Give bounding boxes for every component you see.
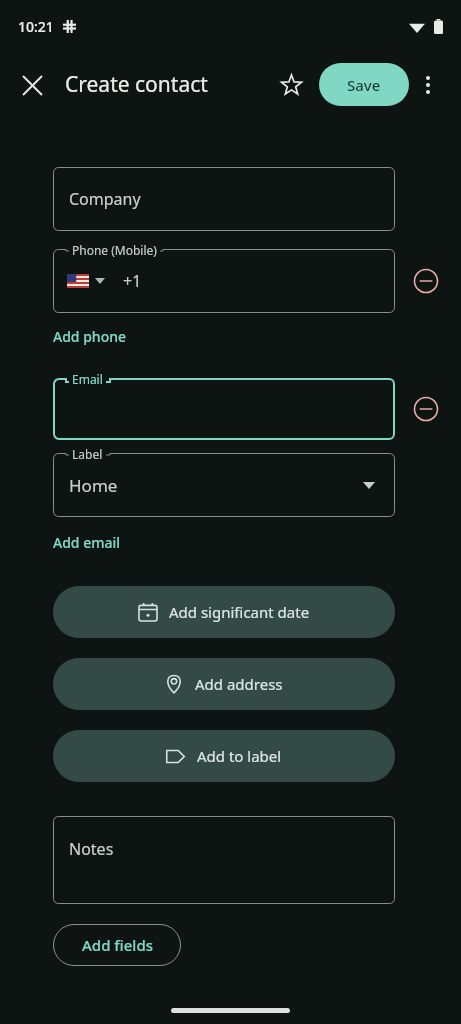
staticText: Save bbox=[347, 75, 381, 95]
button[interactable]: Remove field bbox=[413, 396, 439, 422]
staticText: Label bbox=[72, 446, 103, 462]
button[interactable]: Close bbox=[16, 69, 48, 101]
button[interactable]: Add to label bbox=[53, 730, 395, 782]
staticText: Phone (Mobile) bbox=[72, 242, 157, 258]
button[interactable]: Add phone bbox=[53, 325, 126, 348]
button[interactable]: Remove field bbox=[413, 268, 439, 294]
button[interactable]: Notes bbox=[53, 816, 395, 904]
staticText: Add fields bbox=[82, 935, 153, 955]
staticText: 10:21 bbox=[18, 17, 54, 36]
button[interactable]: Add fields bbox=[53, 924, 181, 966]
staticText: Company bbox=[69, 188, 141, 210]
button[interactable]: Label bbox=[53, 453, 395, 517]
button[interactable]: Add significant date bbox=[53, 586, 395, 638]
button[interactable]: Company bbox=[53, 167, 395, 231]
button[interactable]: Add to favorites bbox=[273, 67, 309, 103]
staticText: +1 bbox=[123, 270, 142, 292]
button[interactable]: More options bbox=[411, 68, 445, 102]
staticText: Add to label bbox=[197, 746, 282, 766]
button[interactable]: Email bbox=[53, 378, 395, 440]
button[interactable]: Add email bbox=[53, 531, 121, 554]
staticText: Add significant date bbox=[169, 602, 310, 622]
staticText: Email bbox=[72, 371, 103, 387]
staticText: Home bbox=[69, 474, 118, 497]
button[interactable]: Save bbox=[319, 63, 409, 106]
button[interactable]: Add address bbox=[53, 658, 395, 710]
staticText: Create contact bbox=[65, 70, 208, 99]
staticText: Add address bbox=[195, 674, 283, 694]
button[interactable]: Phone (Mobile) bbox=[53, 249, 395, 313]
staticText: Notes bbox=[69, 838, 114, 860]
